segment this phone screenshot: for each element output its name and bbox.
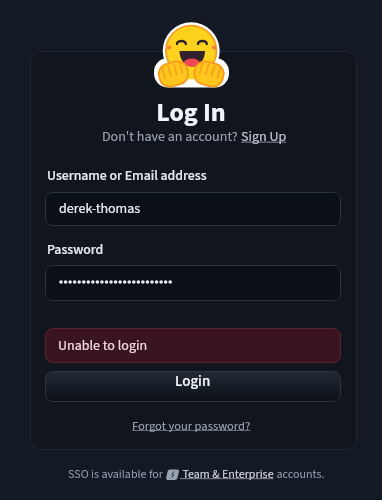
button[interactable]: Team & Enterprise: [180, 466, 274, 483]
staticText: Login: [175, 371, 211, 392]
staticText: Password: [47, 240, 104, 260]
staticText: Log In: [0, 94, 382, 131]
staticText: Username or Email address: [47, 166, 207, 186]
button[interactable]: Sign Up: [241, 127, 287, 147]
button[interactable]: Forgot your password?: [132, 417, 251, 435]
staticText: accounts.: [274, 466, 325, 483]
button[interactable]: derek-thomas: [45, 192, 341, 226]
staticText: SSO is available for: [68, 466, 166, 483]
staticText: Don't have an account?: [102, 127, 241, 147]
button[interactable]: Login: [45, 371, 341, 402]
staticText: derek-thomas: [59, 199, 141, 219]
staticText: Unable to login: [58, 336, 148, 356]
button[interactable]: [45, 265, 341, 301]
